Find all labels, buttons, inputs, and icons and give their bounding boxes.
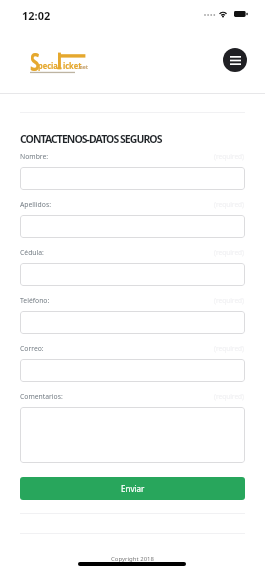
button[interactable]: Enviar <box>20 477 245 500</box>
staticText: pecial <box>38 60 60 72</box>
button[interactable] <box>20 215 245 238</box>
button[interactable] <box>20 359 245 382</box>
staticText: Correo: <box>20 344 44 353</box>
staticText: Comentarios: <box>20 392 63 401</box>
staticText: (required) <box>214 392 245 401</box>
staticText: Apellidos: <box>20 200 51 209</box>
staticText: (required) <box>214 248 245 257</box>
staticText: Teléfono: <box>20 296 50 305</box>
button[interactable] <box>20 263 245 286</box>
staticText: CONTACTENOS-DATOS SEGUROS <box>20 132 162 146</box>
button[interactable] <box>20 311 245 334</box>
staticText: Copyright 2018 <box>111 555 154 563</box>
staticText: icket <box>63 60 81 72</box>
button[interactable] <box>20 407 245 463</box>
staticText: 12:02 <box>22 8 51 23</box>
staticText: (required) <box>214 200 245 209</box>
staticText: S <box>30 45 40 73</box>
staticText: (required) <box>214 344 245 353</box>
staticText: Enviar <box>121 483 145 494</box>
staticText: Cédula: <box>20 248 44 257</box>
staticText: .net <box>78 64 88 71</box>
staticText: (required) <box>214 152 245 161</box>
staticText: Nombre: <box>20 152 49 161</box>
button[interactable] <box>20 167 245 190</box>
button[interactable]: Open menu <box>223 48 247 72</box>
staticText: (required) <box>214 296 245 305</box>
